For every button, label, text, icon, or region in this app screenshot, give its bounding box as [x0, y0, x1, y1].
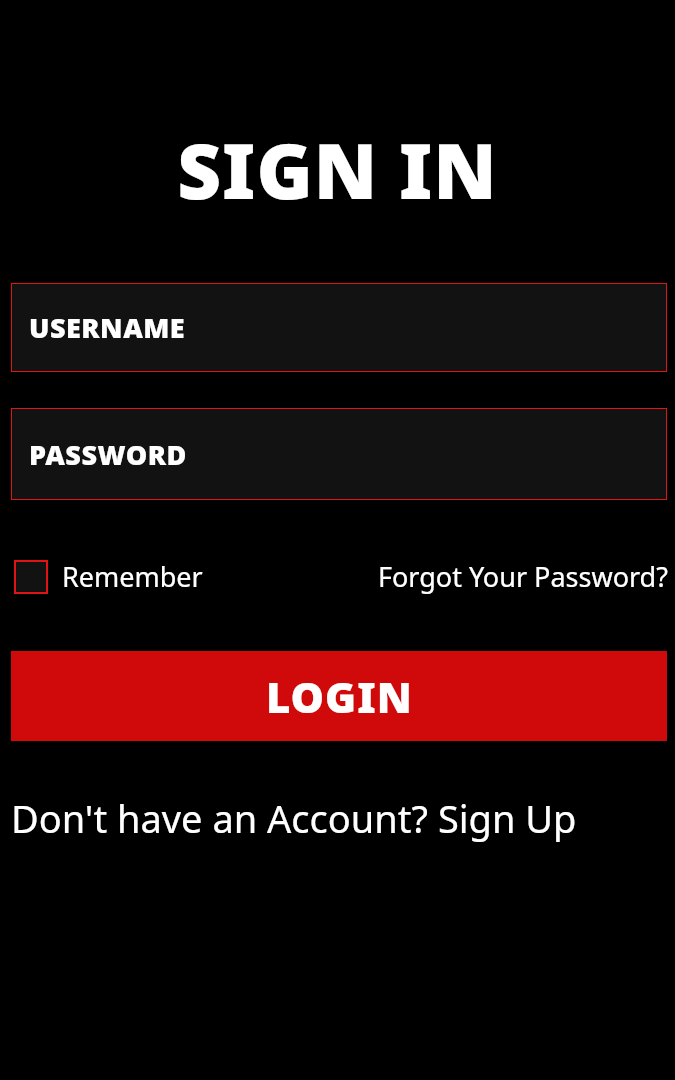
button[interactable]: PASSWORD [11, 408, 667, 500]
button[interactable]: Remember me [14, 558, 203, 595]
button[interactable]: Don't have an Account? Sign Up [11, 792, 577, 844]
staticText: SIGN IN [0, 118, 675, 222]
staticText: USERNAME [29, 309, 186, 346]
button[interactable]: Forgot Your Password? [378, 558, 675, 595]
staticText: LOGIN [266, 668, 413, 725]
staticText: Don't have an Account? Sign Up [11, 792, 577, 844]
staticText: PASSWORD [29, 436, 187, 473]
button[interactable]: USERNAME [11, 283, 667, 372]
staticText: Remember [62, 558, 203, 595]
button[interactable]: LOGIN [11, 651, 667, 741]
staticText: Forgot Your Password? [378, 558, 668, 595]
